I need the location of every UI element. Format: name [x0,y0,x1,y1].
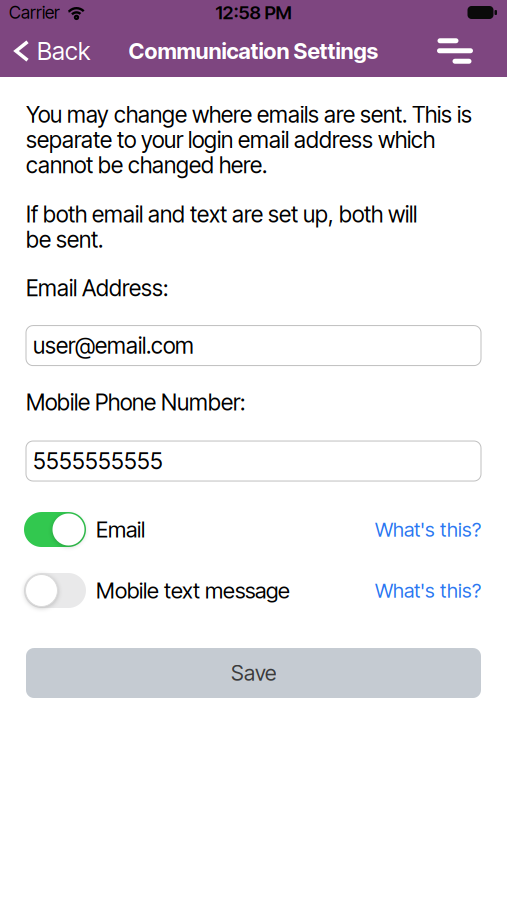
button[interactable]: Email [26,512,88,547]
button[interactable]: Back [14,36,90,66]
button[interactable]: 5555555555 [26,441,481,481]
staticText: 5555555555 [33,447,163,475]
staticText: You may change where emails are sent. Th… [26,102,472,178]
staticText: Carrier [9,2,60,23]
staticText: Email Address: [26,274,168,302]
staticText: What's this? [375,578,481,603]
button[interactable]: What's this? [375,578,481,603]
button[interactable]: Menu [437,38,473,64]
staticText: Mobile Phone Number: [26,389,245,416]
button[interactable]: What's this? [375,517,481,542]
button[interactable]: Save [26,648,481,698]
staticText: Mobile text message [96,577,290,604]
staticText: Save [231,660,276,686]
staticText: What's this? [375,517,481,542]
staticText: Communication Settings [128,38,378,64]
staticText: Email [96,516,145,543]
staticText: user@email.com [33,332,194,359]
button[interactable]: Mobile text message [26,573,88,608]
button[interactable]: user@email.com [26,326,481,366]
staticText: 12:58 PM [215,1,291,24]
staticText: Back [37,36,90,66]
staticText: If both email and text are set up, both … [26,202,417,252]
